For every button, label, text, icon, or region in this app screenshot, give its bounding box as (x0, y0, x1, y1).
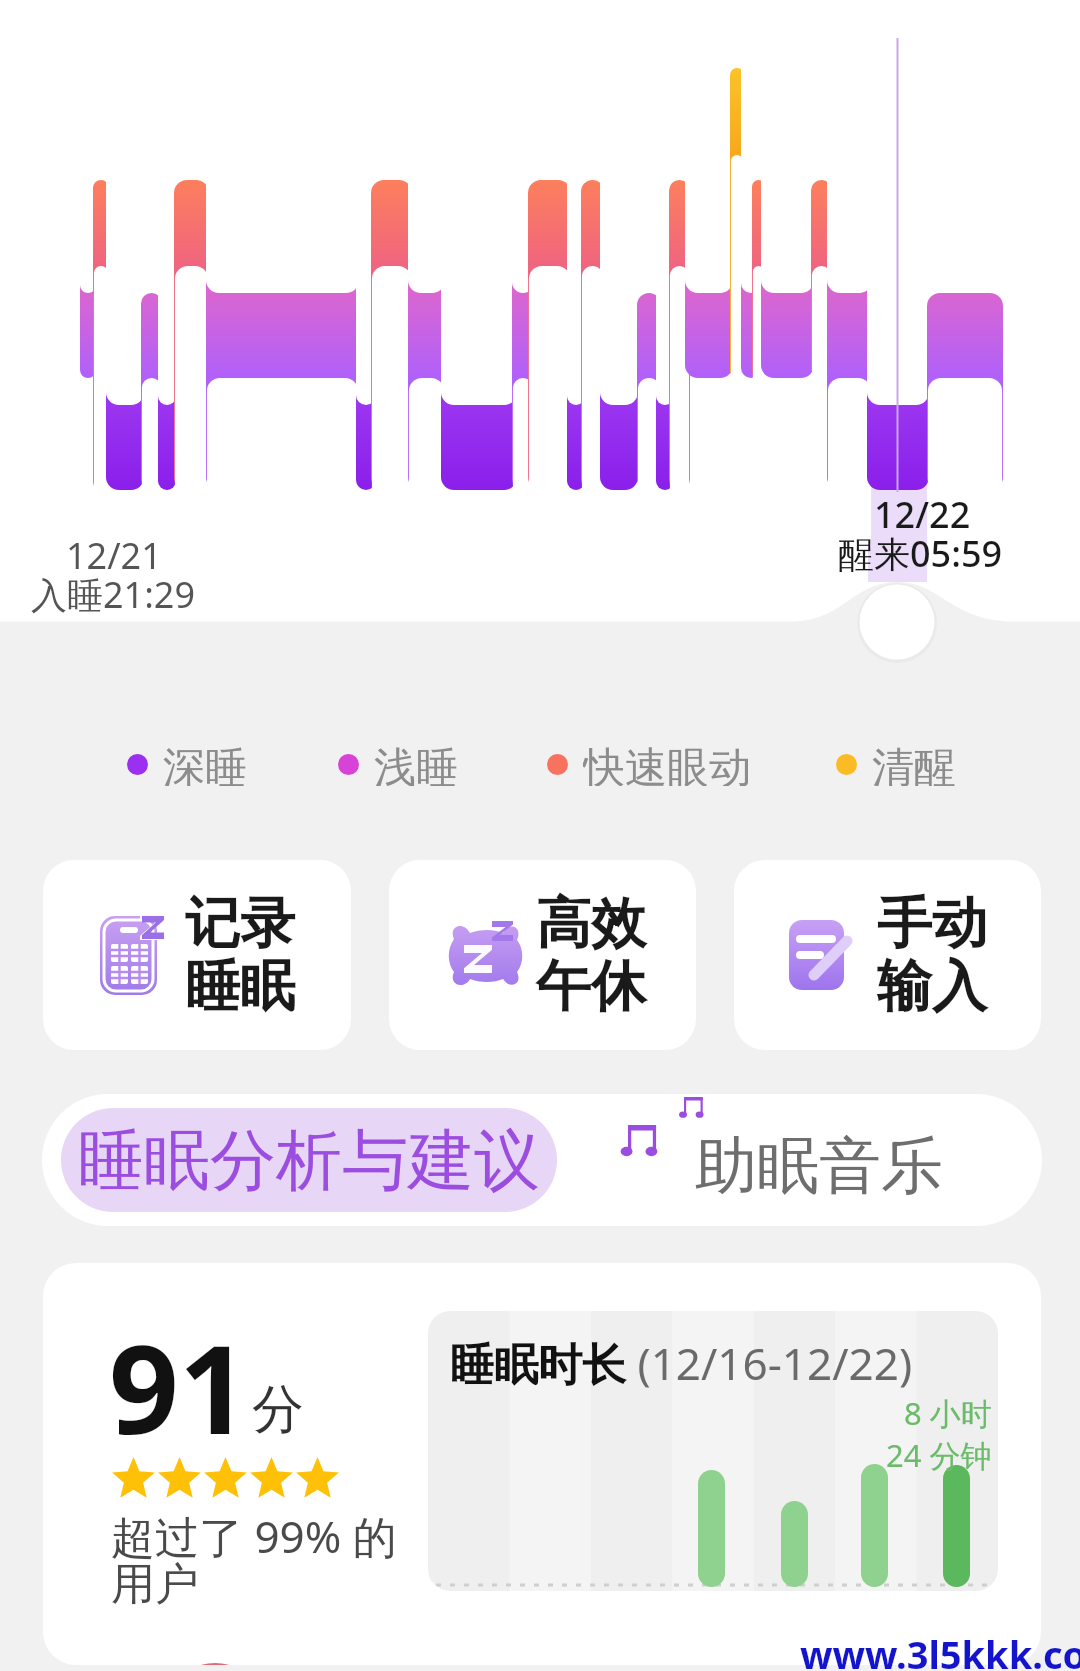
staticText: 用户 (111, 1557, 199, 1612)
staticText: 分 (252, 1377, 304, 1443)
staticText: 浅睡 (374, 742, 458, 786)
staticText: 清醒 (872, 742, 956, 786)
button[interactable]: 清醒 (836, 742, 956, 786)
staticText: 8 小时 (904, 1392, 992, 1434)
staticText: 助眠音乐 (695, 1127, 943, 1205)
button[interactable]: 记录 睡眠 (43, 860, 351, 1050)
staticText: 深睡 (163, 742, 247, 786)
staticText: 睡眠分析与建议 (78, 1119, 540, 1202)
staticText: 入睡21:29 (31, 570, 196, 619)
staticText: www.3l5kkk.com (800, 1628, 1080, 1671)
staticText: 快速眼动 (583, 742, 751, 786)
button[interactable]: 浅睡 (338, 742, 458, 786)
staticText: 12/22 (874, 490, 971, 539)
staticText: 记录 睡眠 (185, 889, 295, 1021)
button[interactable]: 高效 午休 (389, 860, 696, 1050)
button[interactable]: 助眠音乐 (612, 1094, 1042, 1226)
staticText: 超过了 99% 的 (111, 1506, 397, 1566)
staticText: 91 (109, 1304, 249, 1470)
staticText: 手动 输入 (877, 889, 987, 1021)
staticText: 高效 午休 (536, 889, 646, 1021)
button[interactable]: 深睡 (127, 742, 247, 786)
staticText: 24 分钟 (886, 1434, 992, 1476)
button[interactable]: 睡眠分析与建议 (61, 1108, 557, 1212)
button[interactable]: 快速眼动 (547, 742, 751, 786)
button[interactable]: 91 (43, 1263, 1041, 1665)
button[interactable]: 手动 输入 (734, 860, 1041, 1050)
staticText: (12/16-12/22) (626, 1333, 913, 1393)
staticText: 睡眠时长 (450, 1338, 626, 1393)
staticText: 醒来05:59 (838, 529, 1003, 578)
staticText: 12/21 (66, 531, 162, 580)
